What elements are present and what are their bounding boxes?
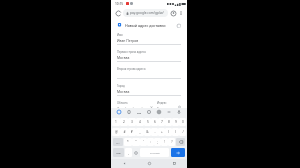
button[interactable]: Русский [140,148,169,157]
button[interactable]: Emoji [133,148,138,157]
staticText: 1 [115,120,117,124]
staticText: * [127,140,129,144]
button[interactable]: 5 [144,118,151,126]
button[interactable]: 4 [136,118,144,126]
staticText: 6 [154,120,156,124]
staticText: Москва [117,89,130,94]
staticText: @ [115,130,118,134]
button[interactable]: ! [161,138,168,146]
staticText: 8 [168,120,170,124]
staticText: =\< [116,141,120,144]
button[interactable]: & [144,128,151,136]
staticText: 3 [131,120,133,124]
button[interactable]: 1 [112,118,120,126]
button[interactable]: Имя [117,33,181,50]
staticText: GIF [137,111,141,114]
staticText: ) [175,130,176,134]
staticText: Иван Петров [117,38,139,43]
staticText: Первая строка адреса [117,50,146,54]
button[interactable]: ( [165,128,172,136]
button[interactable]: Help [176,23,181,28]
button[interactable]: pay.google.com/gp/w/u [123,9,168,17]
button[interactable]: + [158,128,165,136]
staticText: Москва [117,55,130,60]
button[interactable]: Home [137,159,162,168]
button[interactable]: - [151,128,158,136]
staticText: 7 [161,120,163,124]
staticText: 5 [147,120,149,124]
button[interactable]: ; [154,138,161,146]
staticText: АБВ [116,151,121,154]
staticText: & [146,130,149,134]
staticText: Индекс [157,101,167,105]
button[interactable]: 2 [120,118,128,126]
button[interactable]: 6 [151,118,158,126]
button[interactable]: Back [111,159,137,168]
staticText: Алтайский край [117,106,150,108]
button[interactable]: Clipboard [124,108,134,116]
button[interactable]: Вторая строка адреса [117,67,181,84]
staticText: Область [117,101,128,105]
button[interactable]: =\< [113,138,123,146]
button[interactable]: Google [114,108,124,116]
button[interactable]: Enter [171,148,185,157]
staticText: ₽ [131,130,133,134]
staticText: _ [139,130,141,134]
staticText: Город [117,84,125,88]
staticText: : [150,140,151,144]
staticText: 4 [139,120,141,124]
staticText: 9 [175,120,177,124]
button[interactable]: : [147,138,154,146]
staticText: 6 [157,106,178,108]
button[interactable]: 9 [172,118,179,126]
button[interactable]: 3 [128,118,136,126]
button[interactable]: * [124,138,132,146]
staticText: pay.google.com/gp/w/u [130,11,165,15]
button[interactable]: Sticker [144,108,154,116]
staticText: ; [157,140,158,144]
staticText: Русский [150,151,160,154]
button[interactable]: 0 [179,118,186,126]
staticText: 0 [182,120,184,124]
button[interactable]: " [132,138,140,146]
button[interactable]: ? [168,138,175,146]
button[interactable]: More [164,108,174,116]
staticText: ! [164,140,165,144]
button[interactable]: , [125,148,132,157]
staticText: - [154,130,156,134]
staticText: Новый адрес доставки [125,23,166,28]
button[interactable]: Recent apps [162,159,187,168]
staticText: , [128,151,129,155]
staticText: # [123,130,126,134]
staticText: ? [171,140,173,144]
button[interactable]: ₽ [128,128,136,136]
staticText: Вторая строка адреса [117,67,146,71]
button[interactable]: 8 [165,118,172,126]
button[interactable]: Backspace [176,138,185,146]
button[interactable]: ) [172,128,179,136]
button[interactable]: Letters keyboard [113,148,124,157]
staticText: " [135,140,137,144]
button[interactable]: _ [136,128,144,136]
staticText: Имя [117,33,123,37]
button[interactable]: Voice input [174,108,184,116]
staticText: 10:15 [115,2,124,6]
button[interactable]: More options [177,9,184,16]
staticText: 2 [123,120,125,124]
staticText: ( [168,130,169,134]
staticText: / [182,130,184,134]
button[interactable]: GIF [134,108,144,116]
staticText: + [161,130,163,134]
button[interactable]: Reload [114,9,122,17]
staticText: ' [143,140,144,144]
button[interactable]: ' [140,138,147,146]
button[interactable]: Account [169,9,177,17]
button[interactable]: Settings [154,108,164,116]
button[interactable]: 7 [158,118,165,126]
button[interactable]: @ [112,128,120,136]
button[interactable]: / [179,128,186,136]
button[interactable]: Город [117,84,181,101]
button[interactable]: # [120,128,128,136]
button[interactable]: Первая строка адреса [117,50,181,67]
